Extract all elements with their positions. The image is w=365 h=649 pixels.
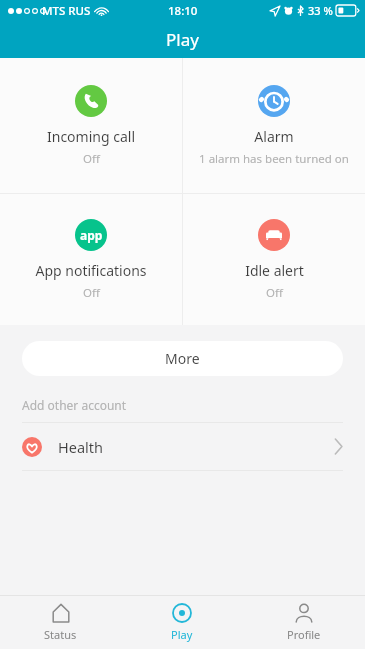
button[interactable]: Incoming call (0, 58, 182, 193)
button[interactable]: Play (121, 596, 243, 649)
staticText: Off (266, 285, 283, 301)
button[interactable]: More (22, 341, 343, 376)
staticText: Incoming call (47, 127, 135, 146)
staticText: Add other account (22, 397, 127, 413)
staticText: More (165, 349, 200, 368)
staticText: Idle alert (245, 261, 304, 280)
other: Open Health (334, 439, 343, 454)
staticText: Status (44, 627, 77, 642)
button[interactable]: Idle alert (183, 194, 365, 325)
staticText: Off (83, 285, 100, 301)
staticText: Health (58, 437, 103, 457)
button[interactable]: Alarm (183, 58, 365, 193)
staticText: MTS RUS (42, 3, 91, 19)
staticText: 33 % (308, 3, 333, 18)
staticText: Play (166, 28, 199, 51)
button[interactable]: app (0, 194, 182, 325)
staticText: app (80, 227, 103, 243)
staticText: Profile (287, 627, 321, 642)
staticText: Play (171, 627, 193, 642)
staticText: 1 alarm has been turned on (199, 151, 349, 167)
button[interactable]: Health (0, 423, 365, 470)
staticText: App notifications (35, 261, 147, 280)
staticText: Off (83, 151, 100, 167)
button[interactable]: Profile (243, 596, 365, 649)
button[interactable]: Status (0, 596, 121, 649)
staticText: 18:10 (168, 3, 198, 19)
staticText: Alarm (254, 127, 294, 146)
